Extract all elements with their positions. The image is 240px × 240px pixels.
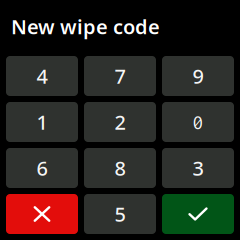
staticText: 5	[114, 201, 125, 227]
button[interactable]: Cancel	[6, 194, 78, 234]
button[interactable]: 8	[84, 148, 156, 188]
staticText: 6	[36, 155, 47, 181]
button[interactable]: 2	[84, 102, 156, 142]
staticText: 1	[36, 109, 47, 135]
button[interactable]: 0	[162, 102, 234, 142]
staticText: 3	[192, 155, 203, 181]
button[interactable]: 9	[162, 56, 234, 96]
button[interactable]: Confirm	[162, 194, 234, 234]
staticText: 2	[114, 109, 125, 135]
button[interactable]: 4	[6, 56, 78, 96]
staticText: 9	[192, 63, 203, 89]
staticText: 4	[36, 63, 47, 89]
staticText: 7	[114, 63, 125, 89]
staticText: 8	[114, 155, 125, 181]
button[interactable]: 7	[84, 56, 156, 96]
button[interactable]: 6	[6, 148, 78, 188]
button[interactable]: 3	[162, 148, 234, 188]
staticText: 0	[192, 111, 203, 133]
staticText: New wipe code	[11, 13, 160, 40]
button[interactable]: 1	[6, 102, 78, 142]
button[interactable]: 5	[84, 194, 156, 234]
